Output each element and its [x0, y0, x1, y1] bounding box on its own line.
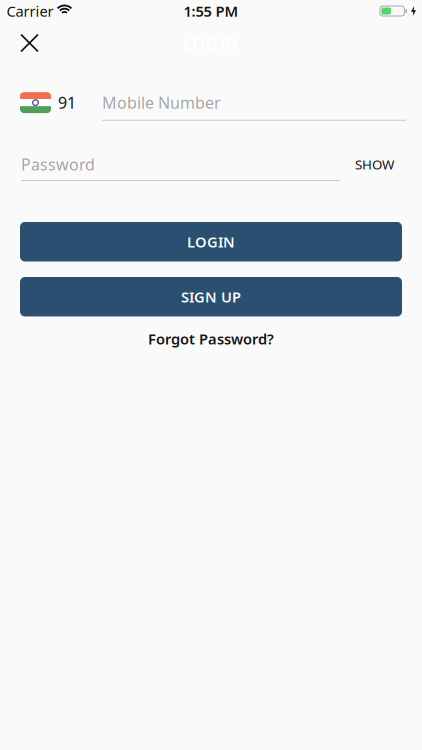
staticText: Password: [21, 154, 95, 175]
staticText: LOGIN: [187, 232, 235, 251]
staticText: SHOW: [355, 155, 394, 173]
button[interactable]: LOGIN: [20, 222, 402, 261]
button[interactable]: Close: [0, 26, 50, 59]
staticText: Forgot Password?: [148, 329, 274, 348]
staticText: SIGN UP: [181, 287, 241, 306]
button[interactable]: SIGN UP: [20, 277, 402, 316]
staticText: Carrier: [6, 1, 53, 21]
staticText: Mobile Number: [102, 92, 221, 113]
button[interactable]: Forgot Password?: [148, 329, 274, 348]
button[interactable]: SHOW: [355, 155, 394, 173]
staticText: 1:55 PM: [183, 1, 238, 21]
staticText: 91: [58, 92, 76, 113]
